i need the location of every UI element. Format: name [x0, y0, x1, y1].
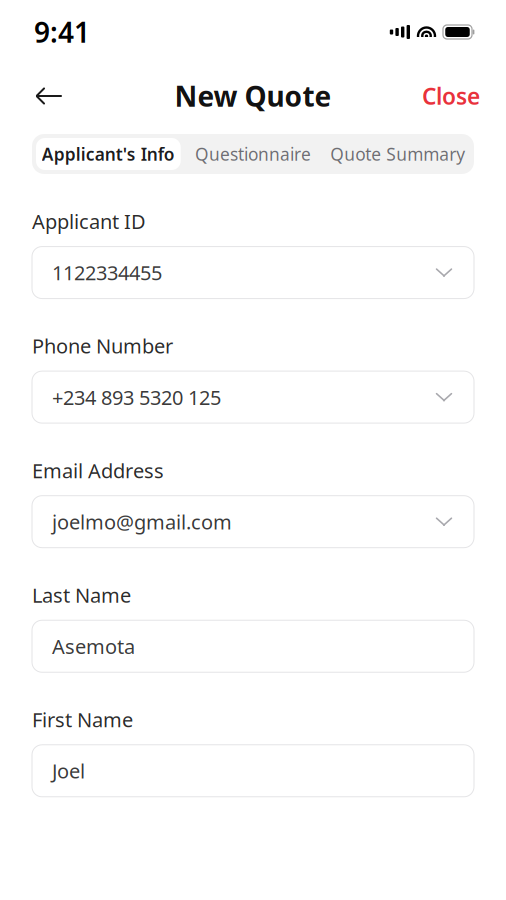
staticText: Last Name [32, 582, 131, 608]
button[interactable]: Joel [32, 745, 474, 797]
staticText: Email Address [32, 457, 164, 484]
staticText: joelmo@gmail.com [52, 508, 232, 535]
staticText: 1122334455 [52, 259, 162, 286]
button[interactable]: +234 893 5320 125 [32, 371, 474, 423]
button[interactable]: joelmo@gmail.com [32, 496, 474, 548]
button[interactable]: Questionnaire [181, 138, 325, 170]
staticText: 9:41 [34, 13, 90, 51]
button[interactable]: Back [26, 76, 72, 116]
staticText: Close [422, 81, 480, 111]
staticText: New Quote [174, 77, 331, 115]
button[interactable]: 1122334455 [32, 247, 474, 299]
button[interactable]: Quote Summary [325, 138, 470, 170]
button[interactable]: Asemota [32, 620, 474, 672]
staticText: Questionnaire [195, 142, 311, 165]
staticText: +234 893 5320 125 [52, 384, 221, 410]
staticText: Asemota [52, 633, 135, 660]
button[interactable]: Close [422, 76, 480, 116]
staticText: Quote Summary [330, 142, 465, 165]
staticText: Applicant ID [32, 208, 146, 235]
staticText: Phone Number [32, 333, 173, 359]
staticText: First Name [32, 706, 133, 733]
staticText: Joel [52, 757, 85, 784]
staticText: Applicant's Info [42, 142, 175, 165]
button[interactable]: Applicant's Info [36, 138, 181, 170]
